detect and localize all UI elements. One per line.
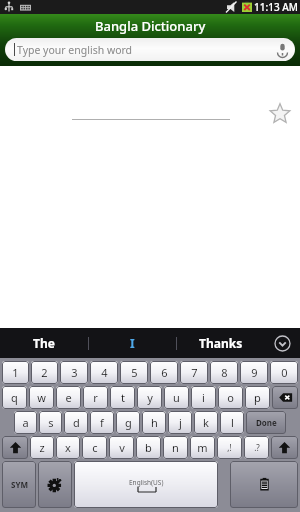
staticText: e [65,390,72,405]
staticText: Type your english word [17,43,133,57]
staticText: p [254,390,261,405]
button[interactable]: Clipboard [230,461,298,508]
staticText: .? [254,442,260,453]
staticText: 2 [41,365,48,380]
staticText: f [100,415,104,430]
staticText: 8 [221,365,228,380]
button[interactable]: d [64,411,88,434]
button[interactable]: j [168,411,192,434]
button[interactable]: a [14,411,37,434]
staticText: y [147,390,153,405]
button[interactable]: Voice input [274,41,291,58]
staticText: 5 [131,365,138,380]
button[interactable]: t [110,386,135,409]
staticText: The [33,335,55,351]
button[interactable]: Expand suggestions [264,328,300,358]
staticText: 0 [281,365,288,380]
staticText: 9 [251,365,258,380]
button[interactable]: Done [246,411,286,434]
button[interactable]: u [164,386,189,409]
button[interactable]: Shift [271,436,298,459]
button[interactable]: 4 [90,361,118,384]
button[interactable]: r [83,386,108,409]
staticText: j [179,415,182,430]
button[interactable]: Type your english word [5,38,295,61]
staticText: 4 [101,365,108,380]
staticText: Done [256,417,277,428]
staticText: z [39,440,45,455]
staticText: a [22,415,29,430]
button[interactable]: 5 [120,361,148,384]
staticText: c [92,440,98,455]
button[interactable]: Thanks [177,328,264,358]
button[interactable]: h [142,411,166,434]
staticText: h [151,415,158,430]
staticText: x [65,440,71,455]
button[interactable]: y [137,386,162,409]
staticText: I [130,335,135,351]
staticText: g [125,415,132,430]
button[interactable]: Settings [38,461,72,508]
staticText: d [73,415,80,430]
button[interactable]: w [29,386,54,409]
button[interactable]: 7 [180,361,208,384]
staticText: k [203,415,209,430]
staticText: 1 [12,365,19,380]
button[interactable]: 8 [210,361,238,384]
button[interactable]: v [109,436,134,459]
button[interactable]: q [2,386,27,409]
button[interactable]: 0 [270,361,298,384]
button[interactable]: I [89,328,176,358]
staticText: Thanks [199,335,243,351]
button[interactable]: n [163,436,188,459]
staticText: s [48,415,54,430]
staticText: n [172,440,179,455]
button[interactable]: m [190,436,215,459]
button[interactable]: 2 [31,361,58,384]
staticText: u [173,390,180,405]
button[interactable]: ,! [217,436,242,459]
button[interactable]: s [39,411,62,434]
button[interactable]: b [136,436,161,459]
staticText: w [37,390,46,405]
button[interactable]: 6 [150,361,178,384]
button[interactable]: e [56,386,81,409]
button[interactable]: l [220,411,244,434]
button[interactable]: The [0,328,88,358]
button[interactable]: 1 [2,361,29,384]
button[interactable]: Backspace [272,386,298,409]
button[interactable]: 3 [60,361,88,384]
button[interactable]: k [194,411,218,434]
staticText: b [145,440,152,455]
staticText: i [202,390,205,405]
button[interactable]: z [30,436,54,459]
staticText: SYM [11,479,28,490]
button[interactable]: p [245,386,270,409]
staticText: v [119,440,125,455]
staticText: ,! [227,442,232,453]
button[interactable]: Add to favourites [266,100,294,128]
staticText: English(US) [129,478,164,487]
staticText: 6 [161,365,168,380]
button[interactable]: i [191,386,216,409]
button[interactable]: SYM [2,461,36,508]
button[interactable]: .? [244,436,269,459]
staticText: l [231,415,234,430]
button[interactable]: f [90,411,114,434]
staticText: 11:13 AM [254,0,298,14]
button[interactable]: x [56,436,80,459]
staticText: r [93,390,98,405]
staticText: 7 [191,365,198,380]
button[interactable]: o [218,386,243,409]
staticText: q [11,390,18,405]
button[interactable]: Shift [2,436,28,459]
staticText: 3 [71,365,78,380]
staticText: t [121,390,125,405]
button[interactable]: g [116,411,140,434]
button[interactable]: Space [74,461,218,508]
button[interactable]: 9 [240,361,268,384]
staticText: Bangla Dictionary [95,17,206,35]
button[interactable]: c [82,436,107,459]
staticText: m [197,440,208,455]
staticText: o [227,390,234,405]
